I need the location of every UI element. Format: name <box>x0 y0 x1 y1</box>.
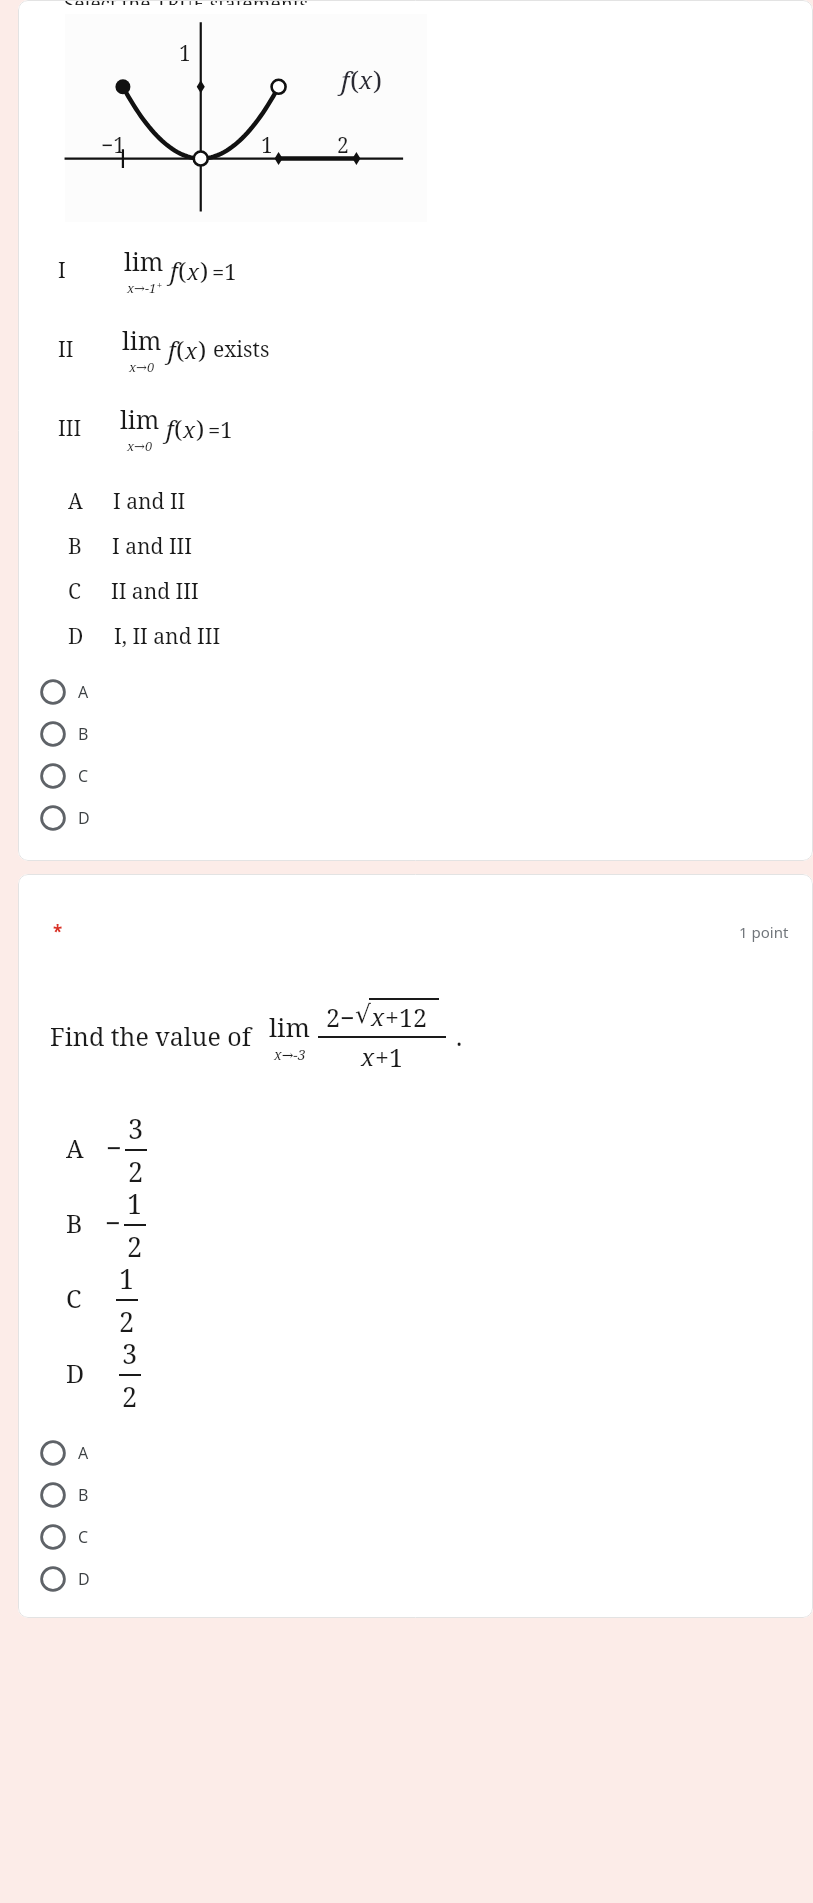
staticText: D <box>68 622 84 651</box>
staticText: ( <box>178 254 187 287</box>
button[interactable]: B <box>18 713 813 755</box>
staticText: lim <box>124 244 164 278</box>
staticText: x <box>371 1000 385 1033</box>
staticText: =1 <box>212 256 237 286</box>
staticText: B <box>66 1206 83 1240</box>
staticText: 3 <box>122 1335 138 1372</box>
button[interactable]: B <box>18 1474 813 1516</box>
staticText: x→−1⁺ <box>127 279 162 297</box>
staticText: D <box>66 1356 85 1390</box>
staticText: x <box>185 335 198 365</box>
staticText: − <box>106 1129 122 1166</box>
button[interactable]: D <box>18 797 813 839</box>
staticText: ( <box>174 412 183 445</box>
staticText: II <box>58 335 74 364</box>
staticText: I, II and III <box>114 622 221 651</box>
staticText: lim <box>120 402 160 436</box>
button[interactable]: D <box>18 1558 813 1600</box>
staticText: B <box>78 1484 89 1506</box>
staticText: x <box>359 63 373 96</box>
staticText: x→−3 <box>274 1045 306 1064</box>
staticText: I and II <box>113 487 186 516</box>
staticText: B <box>68 532 82 561</box>
staticText: I <box>58 256 66 285</box>
staticText: x <box>361 1040 375 1073</box>
staticText: f <box>341 62 350 97</box>
staticText: B <box>78 723 89 745</box>
staticText: ) <box>198 333 207 366</box>
staticText: +12 <box>385 1000 427 1034</box>
staticText: =1 <box>208 414 233 444</box>
staticText: ( <box>176 333 185 366</box>
staticText: 2− <box>326 1000 355 1034</box>
staticText: exists <box>213 335 270 364</box>
staticText: * <box>53 920 63 943</box>
button[interactable]: A <box>18 1432 813 1474</box>
staticText: C <box>68 577 81 606</box>
staticText: √ <box>355 1000 371 1029</box>
staticText: A <box>78 1442 89 1464</box>
staticText: I and III <box>112 532 193 561</box>
staticText: f <box>170 254 178 287</box>
staticText: ) <box>200 254 209 287</box>
staticText: C <box>78 765 89 787</box>
staticText: 1 <box>119 1260 135 1297</box>
staticText: 1 <box>127 1185 143 1222</box>
staticText: C <box>66 1281 82 1315</box>
staticText: A <box>68 487 83 516</box>
staticText: x→0 <box>127 437 153 455</box>
staticText: lim <box>269 1009 310 1044</box>
staticText: 1 <box>179 39 191 68</box>
staticText: +1 <box>375 1040 403 1074</box>
staticText: . <box>456 1019 463 1053</box>
staticText: − <box>105 1204 121 1241</box>
staticText: C <box>78 1526 89 1548</box>
staticText: A <box>78 681 89 703</box>
staticText: 2 <box>128 1153 144 1185</box>
staticText: D <box>78 807 90 829</box>
staticText: x <box>183 414 196 444</box>
staticText: ( <box>350 62 359 97</box>
staticText: f <box>166 412 174 445</box>
staticText: f <box>168 333 176 366</box>
staticText: x <box>187 256 200 286</box>
staticText: 2 <box>337 131 349 160</box>
button[interactable]: A <box>18 671 813 713</box>
staticText: lim <box>122 323 162 357</box>
staticText: −1 <box>101 131 125 160</box>
staticText: D <box>78 1568 90 1590</box>
staticText: ) <box>196 412 205 445</box>
staticText: III <box>58 414 82 443</box>
button[interactable]: C <box>18 755 813 797</box>
button[interactable]: C <box>18 1516 813 1558</box>
staticText: Select the TRUE statements. <box>64 0 313 5</box>
staticText: 2 <box>127 1228 143 1260</box>
staticText: 3 <box>128 1110 144 1147</box>
staticText: Find the value of <box>50 1019 251 1053</box>
staticText: ) <box>373 62 382 97</box>
staticText: A <box>66 1131 84 1165</box>
staticText: 1 <box>261 131 273 160</box>
staticText: x→0 <box>129 358 155 376</box>
staticText: II and III <box>111 577 199 606</box>
staticText: 2 <box>119 1303 135 1335</box>
staticText: 2 <box>122 1378 138 1410</box>
staticText: 1 point <box>739 922 789 942</box>
